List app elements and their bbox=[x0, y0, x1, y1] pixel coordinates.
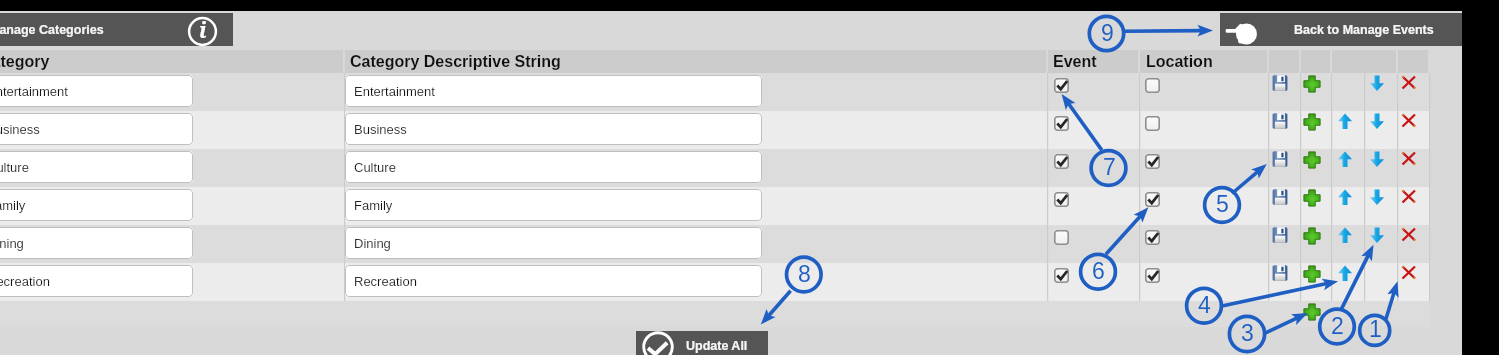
button[interactable]: Dining bbox=[345, 227, 762, 259]
button[interactable]: Checked checkbox bbox=[1054, 268, 1069, 283]
button[interactable]: Business bbox=[0, 113, 193, 145]
button[interactable]: Manage Categories bbox=[0, 13, 233, 46]
staticText: 6 bbox=[1092, 258, 1105, 284]
button[interactable]: Unchecked checkbox bbox=[1145, 78, 1160, 93]
button[interactable]: Checked checkbox bbox=[1145, 230, 1160, 245]
button[interactable]: Checked checkbox bbox=[1145, 154, 1160, 169]
button[interactable]: Recreation bbox=[345, 265, 762, 297]
button[interactable]: Help information bbox=[187, 16, 218, 47]
staticText: Location bbox=[1146, 53, 1213, 71]
staticText: Category bbox=[0, 53, 50, 71]
staticText: Family bbox=[0, 198, 26, 213]
button[interactable]: Recreation bbox=[0, 265, 193, 297]
button[interactable]: Move down bbox=[1368, 189, 1386, 207]
button[interactable]: Delete bbox=[1401, 227, 1419, 245]
button[interactable]: Dining bbox=[0, 227, 193, 259]
button[interactable]: Save bbox=[1271, 150, 1289, 168]
button[interactable]: Move down bbox=[1368, 151, 1386, 169]
staticText: Entertainment bbox=[354, 84, 435, 99]
staticText: Business bbox=[0, 122, 40, 137]
staticText: i bbox=[199, 16, 207, 45]
button[interactable]: Move up bbox=[1336, 113, 1354, 131]
staticText: Business bbox=[354, 122, 407, 137]
button[interactable]: Culture bbox=[0, 151, 193, 183]
button[interactable]: Add bbox=[1303, 151, 1321, 169]
button[interactable]: Move down bbox=[1368, 227, 1386, 245]
button[interactable]: Family bbox=[0, 189, 193, 221]
button[interactable]: Save bbox=[1271, 74, 1289, 92]
button[interactable]: Checked checkbox bbox=[1054, 78, 1069, 93]
button[interactable]: Delete bbox=[1401, 113, 1419, 131]
button[interactable]: Culture bbox=[345, 151, 762, 183]
button[interactable]: Delete bbox=[1401, 265, 1419, 283]
staticText: 4 bbox=[1198, 292, 1211, 318]
button[interactable]: Move up bbox=[1336, 189, 1354, 207]
staticText: 8 bbox=[798, 261, 811, 287]
staticText: Recreation bbox=[354, 274, 417, 289]
button[interactable]: Update All bbox=[636, 331, 768, 355]
button[interactable]: Add bbox=[1303, 227, 1321, 245]
staticText: 5 bbox=[1216, 191, 1229, 217]
staticText: Event bbox=[1053, 53, 1097, 71]
button[interactable]: Entertainment bbox=[345, 75, 762, 107]
staticText: Manage Categories bbox=[0, 23, 104, 37]
staticText: Entertainment bbox=[0, 84, 68, 99]
button[interactable]: Checked checkbox bbox=[1145, 192, 1160, 207]
button[interactable]: Add new category bbox=[1303, 303, 1321, 321]
staticText: Dining bbox=[354, 236, 391, 251]
button[interactable]: Add bbox=[1303, 189, 1321, 207]
button[interactable]: Unchecked checkbox bbox=[1054, 230, 1069, 245]
button[interactable]: Family bbox=[345, 189, 762, 221]
button[interactable]: Add bbox=[1303, 75, 1321, 93]
button[interactable]: Save bbox=[1271, 188, 1289, 206]
button[interactable]: Unchecked checkbox bbox=[1145, 116, 1160, 131]
staticText: 1 bbox=[1369, 316, 1382, 342]
button[interactable]: Checked checkbox bbox=[1054, 116, 1069, 131]
button[interactable]: Move down bbox=[1368, 113, 1386, 131]
staticText: 2 bbox=[1331, 313, 1344, 339]
button[interactable]: Delete bbox=[1401, 151, 1419, 169]
button[interactable]: Add bbox=[1303, 265, 1321, 283]
button[interactable]: Save bbox=[1271, 226, 1289, 244]
staticText: Back to Manage Events bbox=[1294, 23, 1434, 37]
button[interactable]: Entertainment bbox=[0, 75, 193, 107]
staticText: Category Descriptive String bbox=[350, 53, 561, 71]
button[interactable]: Move up bbox=[1336, 265, 1354, 283]
staticText: Culture bbox=[354, 160, 396, 175]
button[interactable]: Move up bbox=[1336, 151, 1354, 169]
button[interactable]: Add bbox=[1303, 113, 1321, 131]
staticText: Family bbox=[354, 198, 393, 213]
button[interactable]: Save bbox=[1271, 264, 1289, 282]
button[interactable]: Back to Manage Events bbox=[1220, 13, 1462, 46]
staticText: Update All bbox=[686, 339, 748, 353]
staticText: Dining bbox=[0, 236, 24, 251]
button[interactable]: Checked checkbox bbox=[1054, 154, 1069, 169]
staticText: Recreation bbox=[0, 274, 50, 289]
button[interactable]: Move up bbox=[1336, 227, 1354, 245]
staticText: 9 bbox=[1101, 20, 1114, 46]
button[interactable]: Business bbox=[345, 113, 762, 145]
button[interactable]: Move down bbox=[1368, 75, 1386, 93]
button[interactable]: Delete bbox=[1401, 189, 1419, 207]
staticText: 3 bbox=[1241, 320, 1254, 346]
button[interactable]: Checked checkbox bbox=[1054, 192, 1069, 207]
staticText: 7 bbox=[1103, 154, 1116, 180]
button[interactable]: Save bbox=[1271, 112, 1289, 130]
button[interactable]: Checked checkbox bbox=[1145, 268, 1160, 283]
button[interactable]: Delete bbox=[1401, 75, 1419, 93]
staticText: Culture bbox=[0, 160, 29, 175]
